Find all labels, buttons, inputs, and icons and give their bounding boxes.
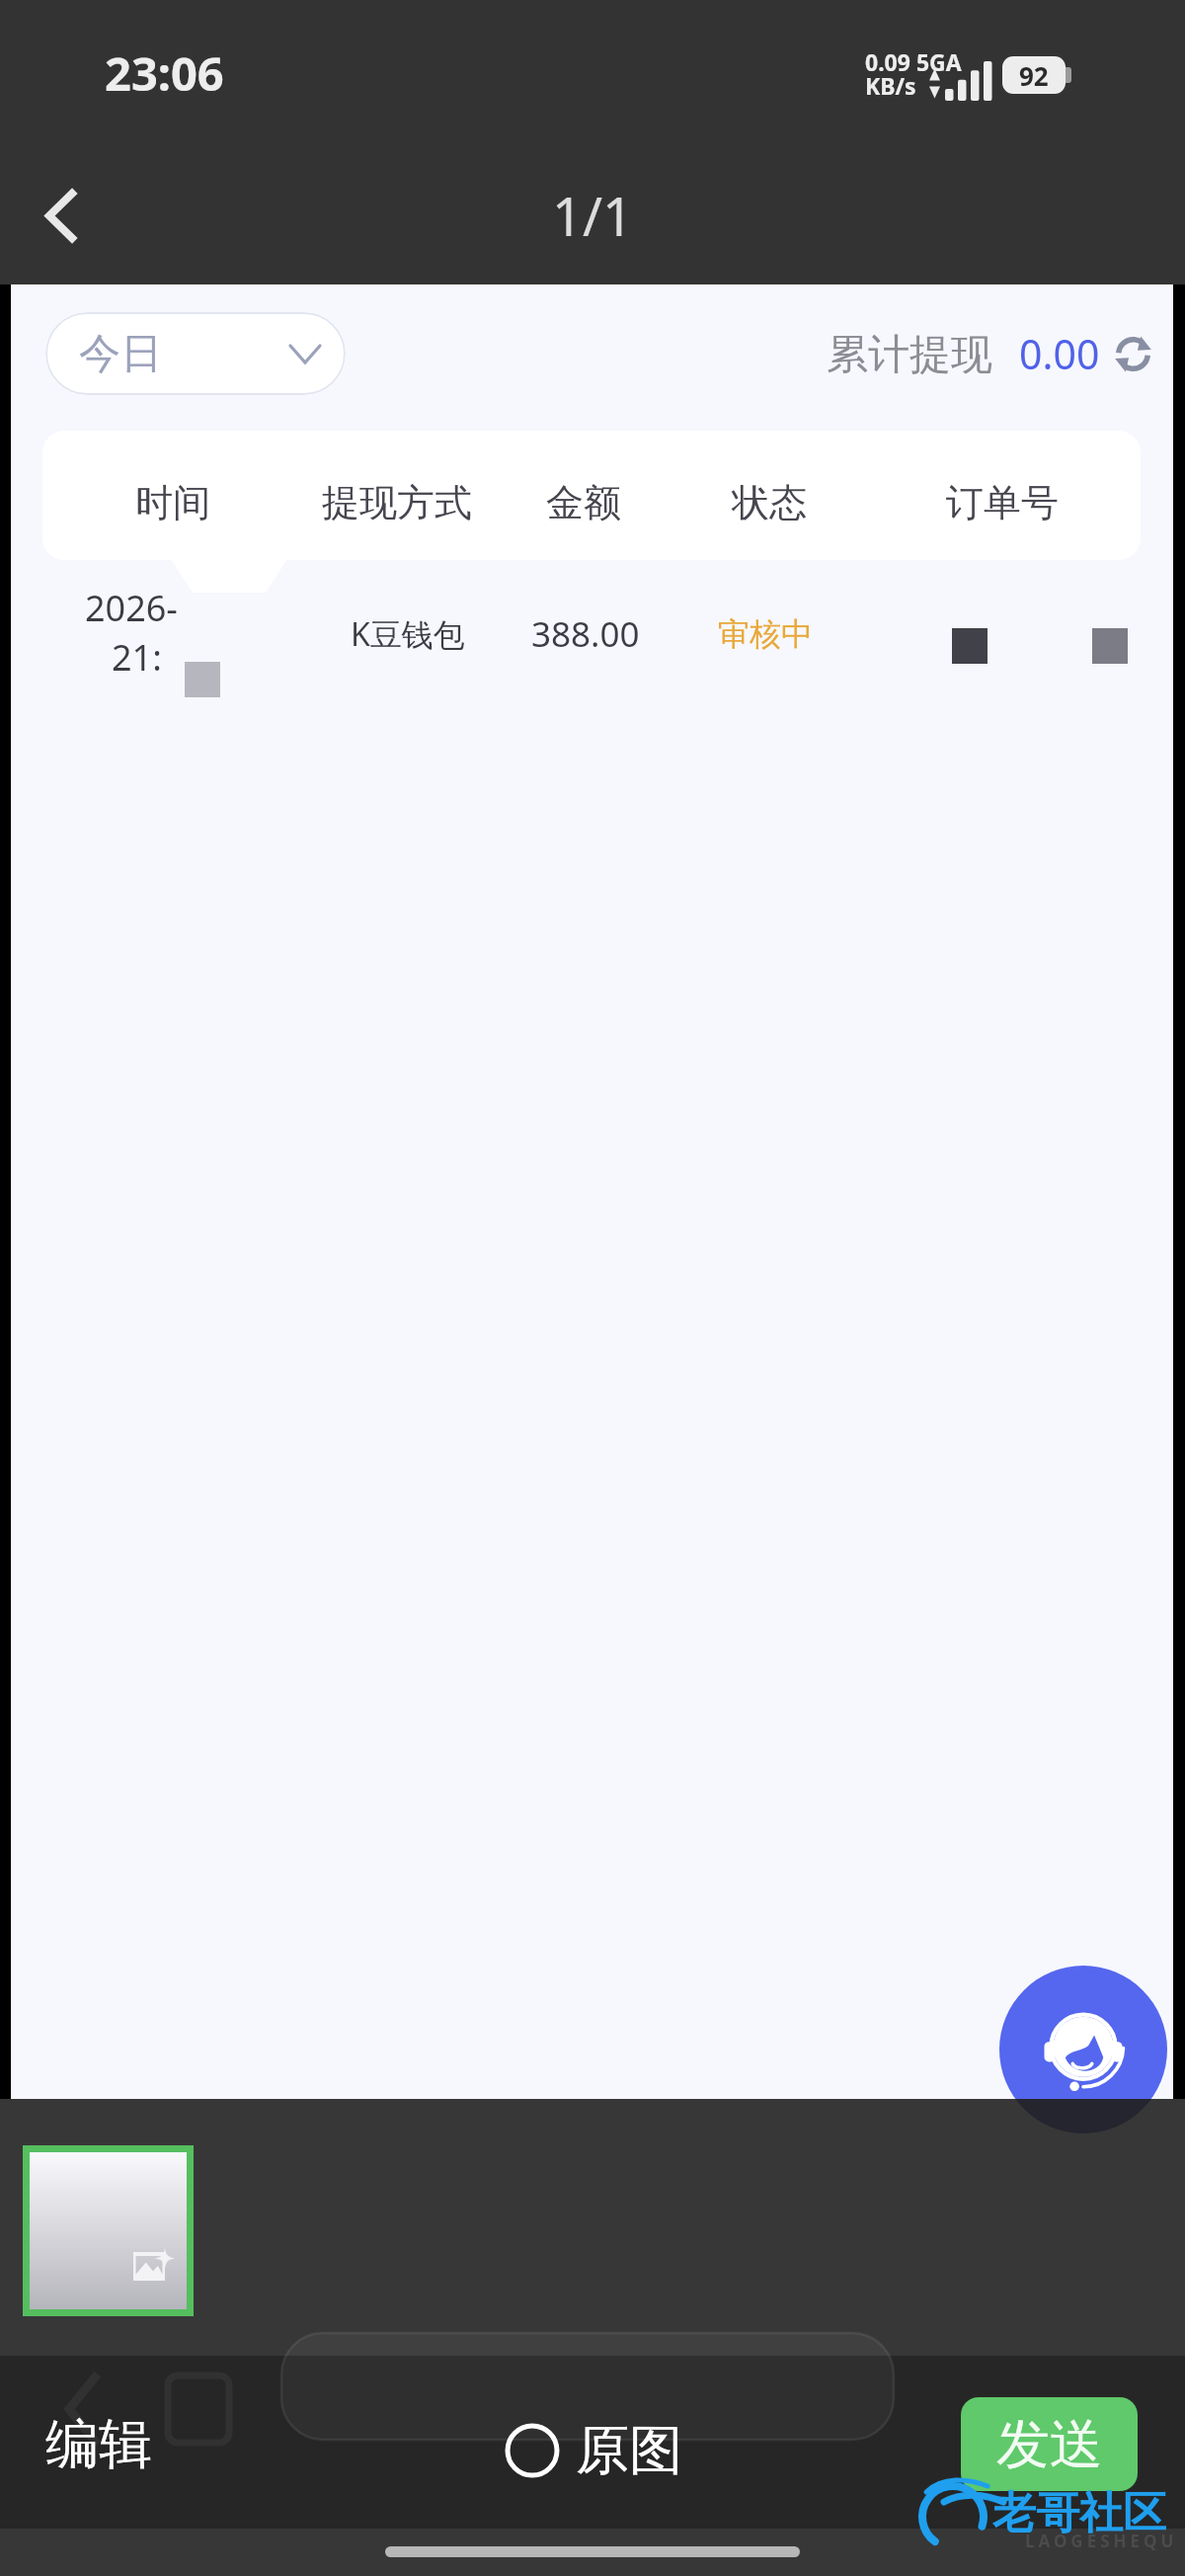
button[interactable]: 发送 [961,2397,1138,2491]
button[interactable]: Selected photo [30,2152,187,2309]
staticText: 原图 [576,2417,682,2484]
staticText: 累计提现 [827,329,992,381]
button[interactable]: Refresh [1115,336,1151,372]
staticText: 今日 [79,328,162,380]
staticText: 订单号 [946,479,1059,526]
staticText: 发送 [996,2411,1103,2478]
staticText: 编辑 [45,2411,152,2478]
staticText: LAOGESHEQU [1025,2530,1178,2552]
button[interactable]: 原图 [499,2407,688,2494]
staticText: 0.09 5GA [865,46,962,77]
staticText: 老哥社区 [992,2486,1166,2540]
button[interactable]: 状态 [621,438,917,567]
button[interactable]: 编辑 [0,2375,197,2514]
button[interactable]: 金额 [435,438,732,567]
staticText: 21: [112,633,162,682]
staticText: K豆钱包 [351,612,465,656]
button[interactable]: Back [4,146,117,284]
button[interactable]: Customer service [999,1966,1167,2133]
staticText: 0.00 [1019,326,1100,381]
staticText: 1/1 [552,179,633,252]
button[interactable]: 时间 [25,438,321,567]
staticText: 审核中 [718,614,813,654]
staticText: 388.00 [531,610,640,658]
staticText: 92 [1019,58,1049,93]
staticText: 23:06 [105,41,224,105]
staticText: 提现方式 [322,479,472,526]
staticText: 时间 [135,479,210,526]
button[interactable]: 今日 [45,312,346,395]
staticText: KB/s [865,70,916,101]
button[interactable]: 提现方式 [249,438,545,567]
button[interactable]: 订单号 [854,438,1150,567]
staticText: 金额 [546,479,621,526]
staticText: 2026- [85,584,178,632]
staticText: 状态 [732,479,807,526]
